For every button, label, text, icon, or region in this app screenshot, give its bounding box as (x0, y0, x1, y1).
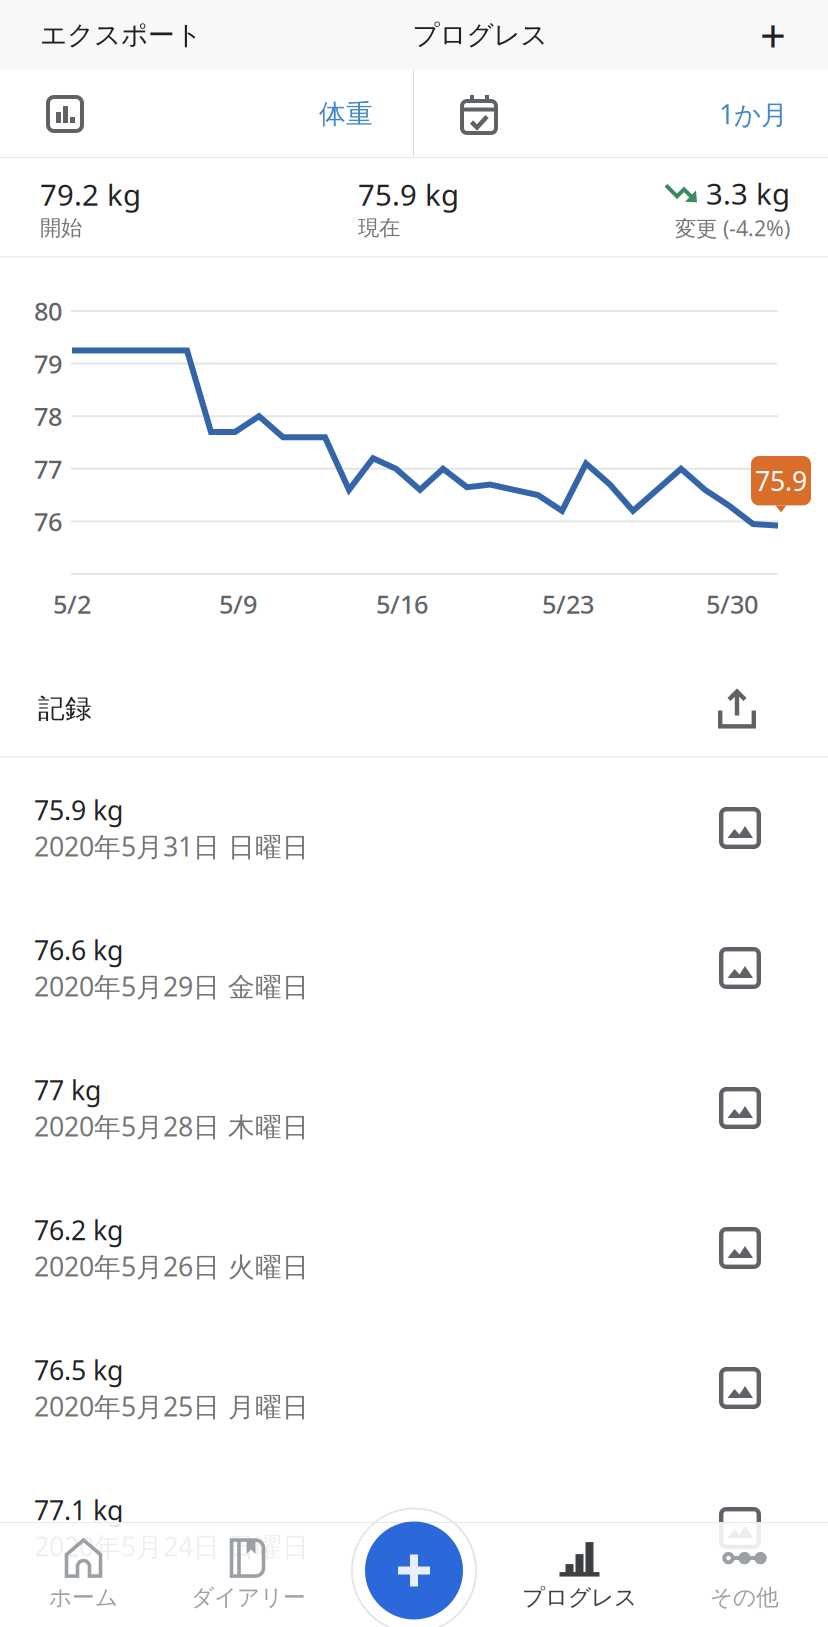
button[interactable]: 77 kg (0, 1038, 828, 1178)
button[interactable]: ダイアリー (166, 1522, 331, 1627)
staticText: 5/9 (219, 587, 257, 621)
button[interactable]: Add entry (351, 1507, 477, 1627)
staticText: 2020年5月28日 木曜日 (34, 1108, 309, 1144)
staticText: 体重 (319, 98, 373, 130)
staticText: 75.9 kg (34, 792, 123, 827)
staticText: 79 (34, 347, 62, 380)
staticText: エクスポート (40, 19, 202, 51)
button[interactable]: 77.1 kg (0, 1458, 828, 1598)
staticText: 79.2 kg (40, 175, 141, 214)
button[interactable]: 76.2 kg (0, 1178, 828, 1318)
staticText: + (760, 5, 786, 65)
button[interactable]: その他 (662, 1522, 827, 1627)
staticText: 5/16 (376, 587, 428, 621)
button[interactable]: 76.5 kg (0, 1318, 828, 1458)
button[interactable]: プログレス (497, 1522, 662, 1627)
button[interactable]: ホーム (1, 1522, 166, 1627)
staticText: 現在 (358, 215, 400, 241)
staticText: 5/23 (542, 587, 594, 621)
staticText: 78 (34, 399, 62, 433)
staticText: 開始 (40, 215, 82, 241)
staticText: 2020年5月31日 日曜日 (34, 828, 309, 864)
button[interactable]: 76.6 kg (0, 898, 828, 1038)
staticText: 75.9 kg (358, 175, 459, 214)
staticText: 77 (34, 452, 62, 486)
staticText: 75.9 (755, 463, 807, 498)
staticText: 5/2 (53, 587, 91, 621)
button[interactable]: 75.9 kg (0, 758, 828, 898)
button[interactable]: Add (718, 0, 828, 70)
staticText: 2020年5月25日 月曜日 (34, 1388, 309, 1424)
button[interactable]: エクスポート (0, 0, 242, 70)
button[interactable]: Share (692, 663, 782, 753)
staticText: 76.6 kg (34, 932, 123, 967)
staticText: その他 (710, 1584, 779, 1611)
staticText: プログレス (522, 1584, 637, 1611)
staticText: 3.3 kg (706, 174, 790, 213)
staticText: 2020年5月26日 火曜日 (34, 1248, 309, 1284)
staticText: 5/30 (706, 587, 758, 621)
button[interactable]: 1か月 (414, 70, 828, 158)
staticText: 80 (34, 294, 62, 328)
staticText: 76.5 kg (34, 1352, 123, 1387)
staticText: 76 (34, 505, 62, 538)
staticText: 76.2 kg (34, 1212, 123, 1247)
staticText: 1か月 (719, 96, 788, 132)
staticText: 2020年5月29日 金曜日 (34, 968, 309, 1004)
staticText: ダイアリー (191, 1584, 306, 1611)
staticText: 記録 (38, 692, 92, 725)
button[interactable]: 体重 (0, 70, 413, 158)
staticText: 2020年5月24日 日曜日 (34, 1528, 309, 1564)
staticText: 77 kg (34, 1072, 101, 1107)
staticText: ホーム (49, 1584, 118, 1611)
staticText: 77.1 kg (34, 1492, 123, 1527)
staticText: 変更 (-4.2%) (675, 214, 790, 242)
staticText: プログレス (412, 19, 547, 51)
